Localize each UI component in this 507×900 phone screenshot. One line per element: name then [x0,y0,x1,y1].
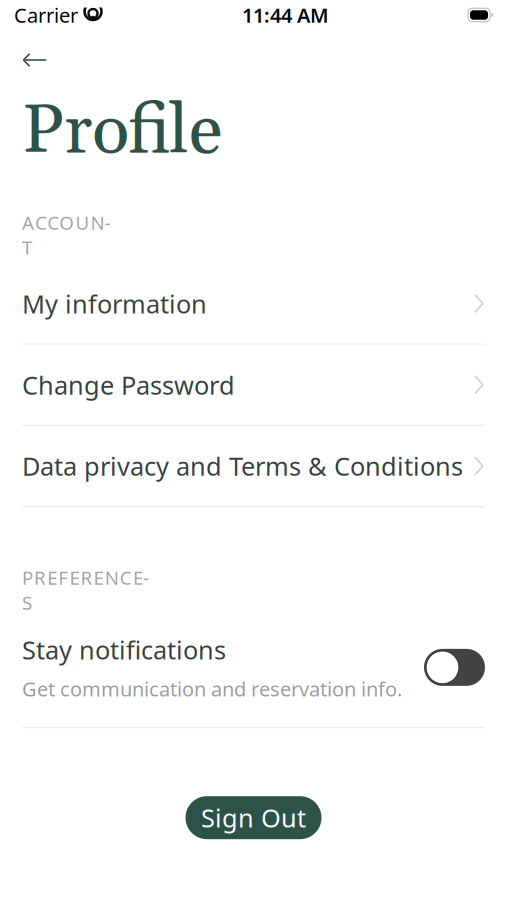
button[interactable]: Stay notifications [424,649,485,686]
button[interactable]: My information [0,264,507,344]
staticText: Profile [22,88,223,176]
button[interactable]: Sign Out [185,796,321,839]
button[interactable]: Data privacy and Terms & Conditions [0,426,507,506]
staticText: Get communication and reservation info. [22,675,402,702]
staticText: Sign Out [201,801,306,834]
staticText: Change Password [22,368,235,402]
staticText: PREFERENCES [22,565,149,615]
staticText: 11:44 AM [242,2,329,28]
staticText: My information [22,287,207,320]
staticText: ACCOUNT [22,210,110,260]
button[interactable]: Change Password [0,345,507,425]
staticText: Data privacy and Terms & Conditions [22,449,463,483]
button[interactable]: Back [0,40,62,80]
staticText: Stay notifications [22,633,226,666]
staticText: Carrier [14,2,78,28]
